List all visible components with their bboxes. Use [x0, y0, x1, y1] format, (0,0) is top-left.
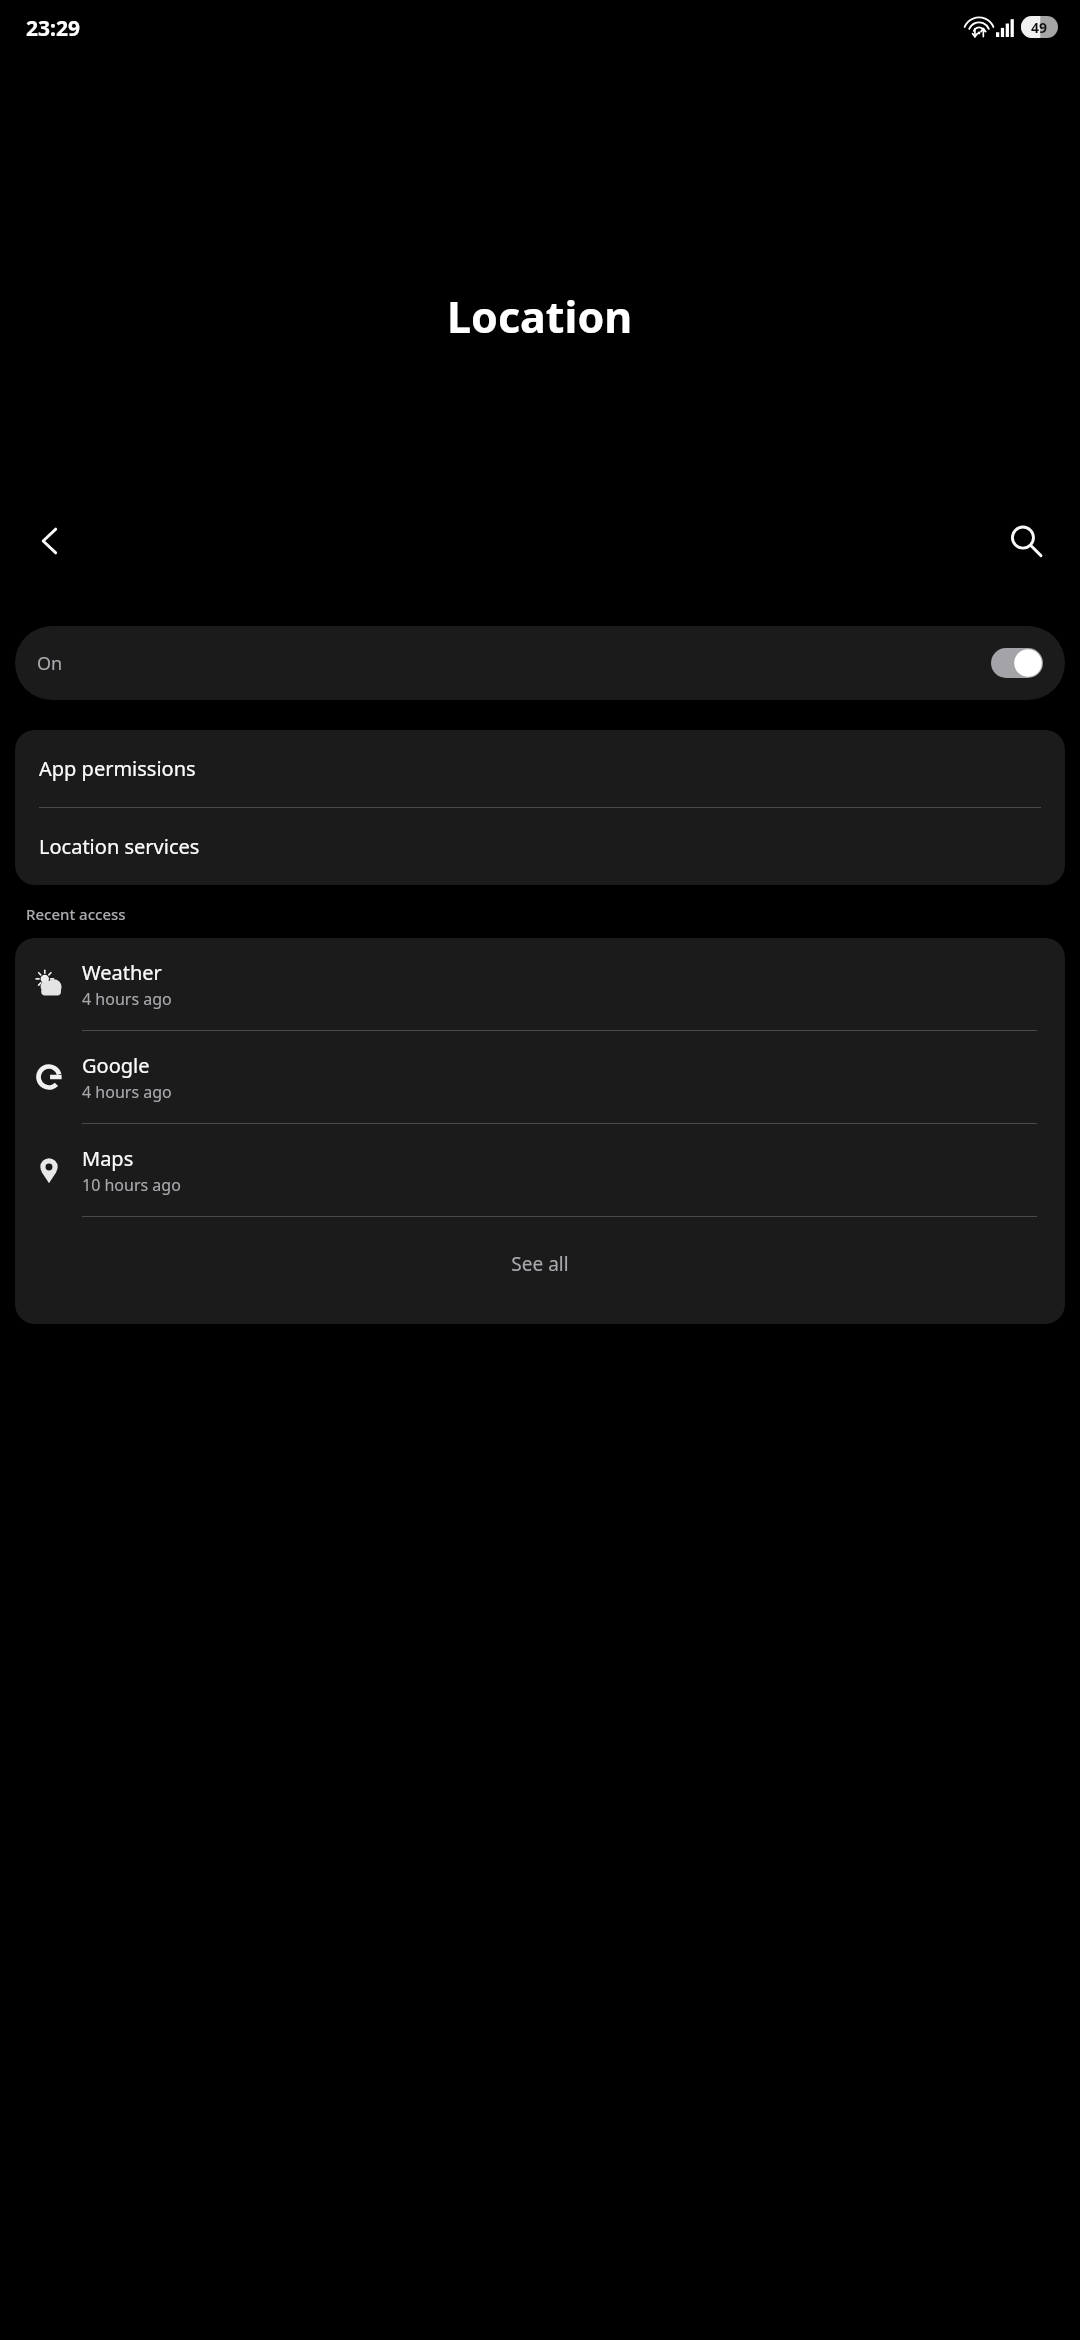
button[interactable]: On	[15, 626, 1065, 700]
staticText: Location	[447, 287, 633, 346]
button[interactable]: Back	[16, 507, 84, 575]
staticText: 10 hours ago	[82, 1174, 181, 1196]
staticText: Maps	[82, 1145, 134, 1172]
button[interactable]: Location services	[15, 808, 1065, 885]
staticText: Location services	[39, 833, 200, 860]
staticText: 23:29	[26, 14, 80, 43]
staticText: 4 hours ago	[82, 1081, 172, 1103]
staticText: Google	[82, 1052, 150, 1079]
staticText: See all	[511, 1251, 569, 1277]
staticText: Recent access	[26, 904, 126, 924]
staticText: Weather	[82, 959, 162, 986]
button[interactable]: Google	[15, 1031, 1065, 1123]
staticText: 4 hours ago	[82, 988, 172, 1010]
staticText: App permissions	[39, 755, 196, 782]
staticText: 49	[1031, 18, 1048, 37]
staticText: On	[37, 651, 63, 676]
button[interactable]: Maps	[15, 1124, 1065, 1216]
button[interactable]: App permissions	[15, 730, 1065, 807]
button[interactable]: See all	[15, 1217, 1065, 1310]
button[interactable]: Weather	[15, 938, 1065, 1030]
button[interactable]: Search	[992, 507, 1060, 575]
